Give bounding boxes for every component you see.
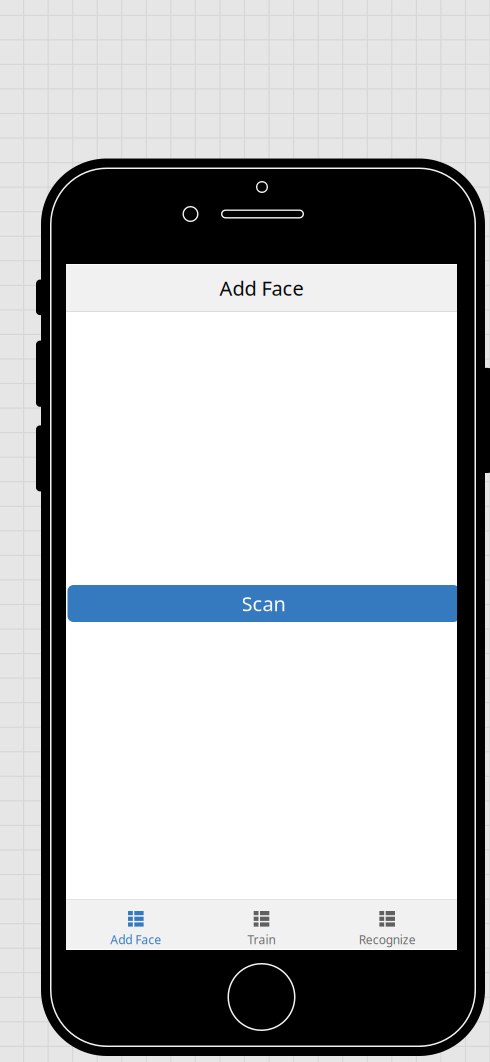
staticText: Add Face xyxy=(110,932,161,947)
button[interactable]: Add Face xyxy=(73,899,199,950)
button[interactable]: Scan xyxy=(67,585,459,622)
staticText: Train xyxy=(247,932,275,947)
staticText: Add Face xyxy=(219,275,303,301)
button[interactable]: Train xyxy=(199,899,324,950)
staticText: Scan xyxy=(241,590,285,617)
button[interactable]: Recognize xyxy=(324,899,450,950)
staticText: Recognize xyxy=(359,932,416,947)
